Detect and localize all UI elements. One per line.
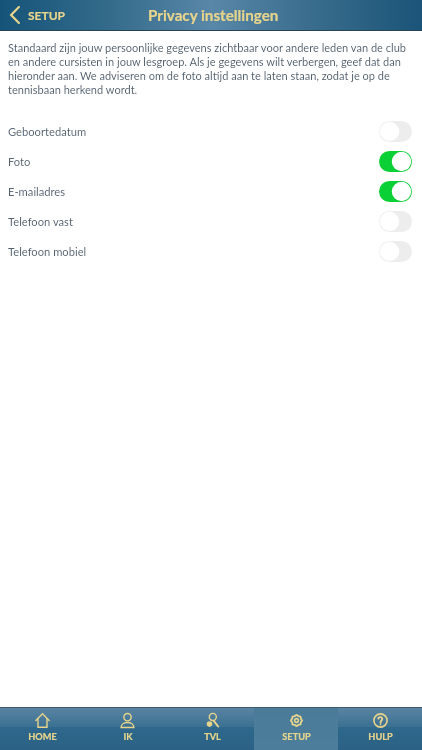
staticText: E-mailadres xyxy=(8,185,66,198)
staticText: Standaard zijn jouw persoonlijke gegeven… xyxy=(8,41,414,96)
staticText: SETUP xyxy=(282,731,311,742)
staticText: Telefoon vast xyxy=(8,215,73,228)
staticText: TVL xyxy=(204,731,221,742)
button[interactable]: Foto xyxy=(0,146,422,176)
button[interactable]: Geboortedatum xyxy=(0,116,422,146)
staticText: Foto xyxy=(8,155,31,168)
button[interactable]: TVL xyxy=(170,708,254,750)
button[interactable]: Telefoon mobiel xyxy=(0,236,422,266)
staticText: Telefoon mobiel xyxy=(8,245,87,258)
staticText: SETUP xyxy=(28,8,66,22)
staticText: Privacy instellingen xyxy=(148,6,279,24)
staticText: HOME xyxy=(28,731,57,742)
button[interactable]: SETUP xyxy=(254,708,338,750)
button[interactable]: HOME xyxy=(0,708,85,750)
button[interactable]: HULP xyxy=(338,708,422,750)
button[interactable]: SETUP xyxy=(0,3,78,27)
button[interactable]: E-mailadres xyxy=(0,176,422,206)
button[interactable]: IK xyxy=(85,708,170,750)
staticText: IK xyxy=(123,731,133,742)
staticText: Geboortedatum xyxy=(8,125,87,138)
button[interactable]: Telefoon vast xyxy=(0,206,422,236)
staticText: HULP xyxy=(368,731,393,742)
